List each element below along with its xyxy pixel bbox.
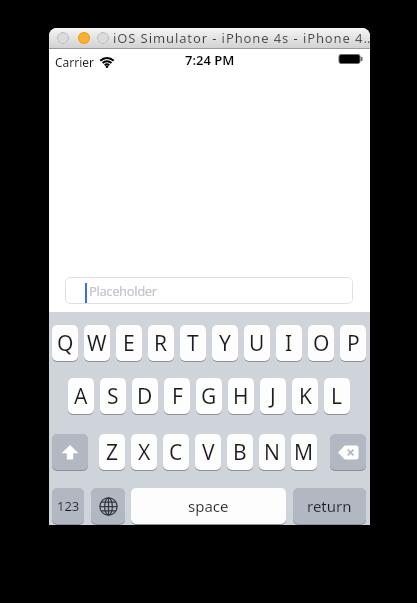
staticText: return <box>307 496 352 516</box>
button[interactable]: I <box>276 325 302 361</box>
button[interactable]: N <box>259 434 285 470</box>
button[interactable]: Q <box>52 325 78 361</box>
button[interactable]: R <box>148 325 174 361</box>
button[interactable] <box>52 434 88 470</box>
staticText: F <box>172 382 183 411</box>
staticText: C <box>169 438 183 467</box>
staticText: Carrier <box>55 54 95 70</box>
staticText: T <box>187 329 199 358</box>
button[interactable]: F <box>164 378 190 414</box>
staticText: G <box>201 382 217 411</box>
button[interactable]: Y <box>212 325 238 361</box>
button[interactable]: X <box>131 434 157 470</box>
button[interactable] <box>57 32 69 44</box>
staticText: space <box>188 496 229 516</box>
button[interactable]: space <box>131 488 286 524</box>
staticText: P <box>347 329 360 358</box>
button[interactable]: J <box>260 378 286 414</box>
button[interactable] <box>91 488 125 524</box>
button[interactable]: B <box>227 434 253 470</box>
staticText: B <box>233 438 247 467</box>
button[interactable]: S <box>100 378 126 414</box>
button[interactable]: W <box>84 325 110 361</box>
button[interactable]: E <box>116 325 142 361</box>
button[interactable] <box>97 32 109 44</box>
button[interactable]: Placeholder <box>65 277 353 304</box>
staticText: L <box>331 382 343 411</box>
button[interactable]: D <box>132 378 158 414</box>
button[interactable]: P <box>340 325 366 361</box>
button[interactable] <box>330 434 366 470</box>
button[interactable]: C <box>163 434 189 470</box>
staticText: A <box>74 382 88 411</box>
staticText: S <box>107 382 119 411</box>
staticText: U <box>249 329 265 358</box>
button[interactable]: Z <box>99 434 125 470</box>
button[interactable]: T <box>180 325 206 361</box>
staticText: N <box>264 438 280 467</box>
button[interactable]: M <box>291 434 317 470</box>
button[interactable]: A <box>68 378 94 414</box>
staticText: X <box>138 438 151 467</box>
staticText: R <box>154 329 168 358</box>
staticText: Q <box>57 329 74 358</box>
button[interactable]: U <box>244 325 270 361</box>
button[interactable]: L <box>324 378 350 414</box>
staticText: O <box>313 329 330 358</box>
staticText: M <box>294 438 314 467</box>
staticText: D <box>137 382 153 411</box>
staticText: K <box>299 382 312 411</box>
staticText: H <box>233 382 249 411</box>
button[interactable]: V <box>195 434 221 470</box>
button[interactable]: G <box>196 378 222 414</box>
button[interactable]: O <box>308 325 334 361</box>
button[interactable] <box>78 32 90 44</box>
staticText: iOS Simulator - iPhone 4s - iPhone 4… <box>113 29 370 47</box>
staticText: 123 <box>57 497 80 515</box>
button[interactable]: return <box>293 488 366 524</box>
staticText: Z <box>106 438 119 467</box>
staticText: W <box>87 329 107 358</box>
staticText: E <box>123 329 135 358</box>
staticText: 7:24 PM <box>185 51 235 69</box>
button[interactable]: H <box>228 378 254 414</box>
staticText: V <box>202 438 215 467</box>
staticText: I <box>285 329 293 358</box>
staticText: Placeholder <box>89 282 157 300</box>
staticText: J <box>270 382 276 411</box>
staticText: Y <box>219 329 231 358</box>
button[interactable]: 123 <box>52 488 84 524</box>
button[interactable]: K <box>292 378 318 414</box>
